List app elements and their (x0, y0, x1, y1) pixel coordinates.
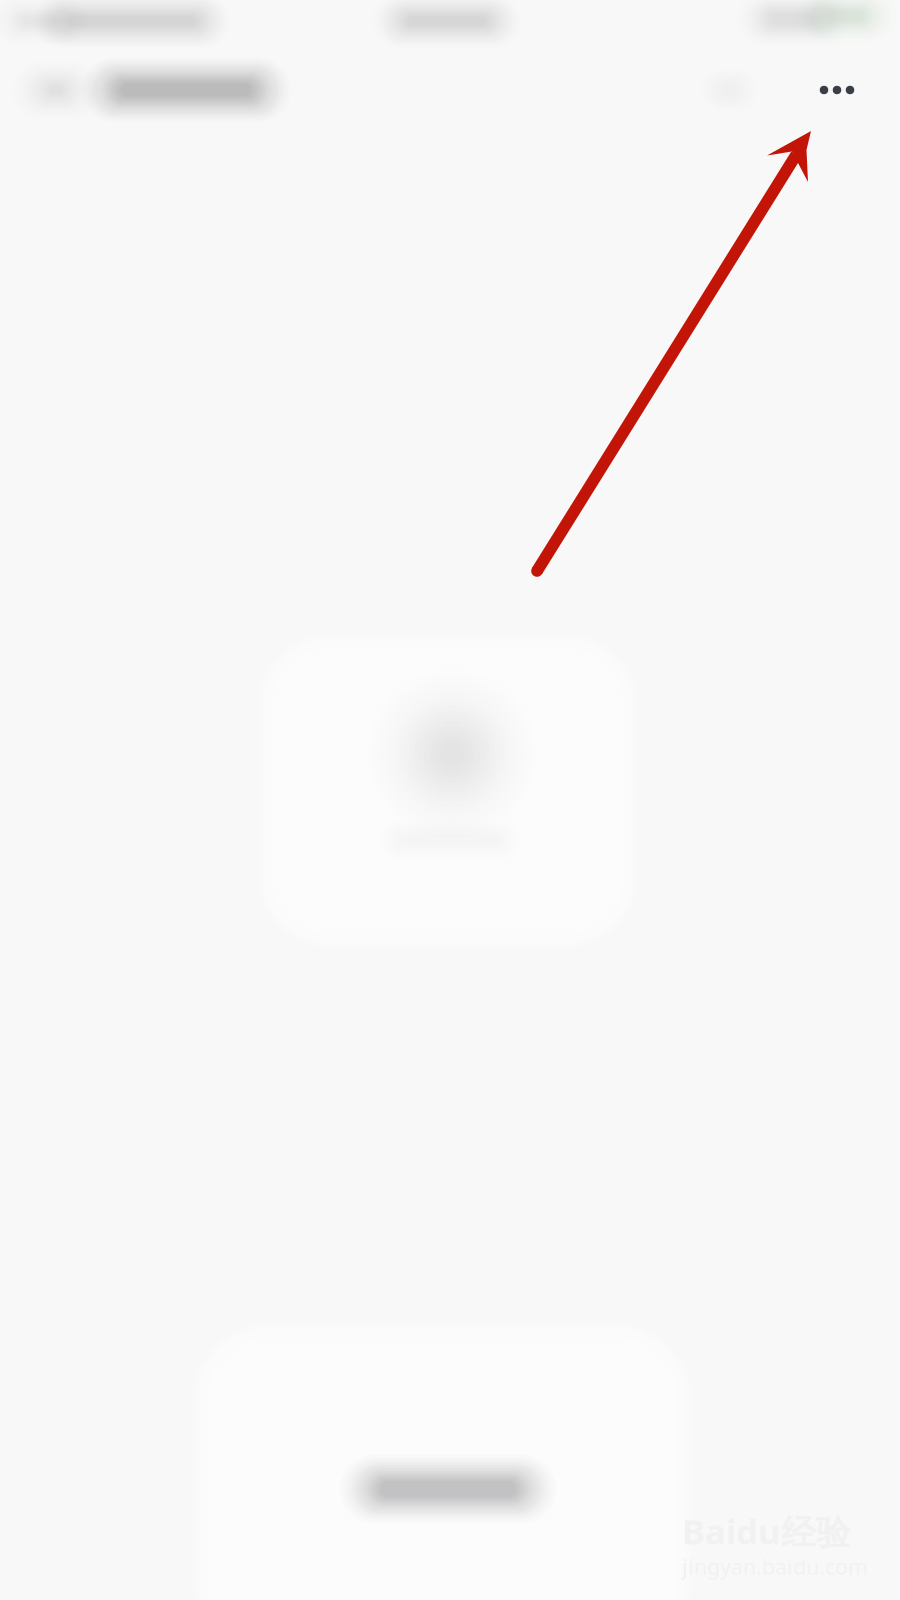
button[interactable]: Back (18, 50, 94, 130)
button[interactable]: Confirm (286, 1412, 618, 1562)
staticText: Baidu经验 (682, 1508, 851, 1554)
button[interactable]: More options (793, 50, 881, 130)
